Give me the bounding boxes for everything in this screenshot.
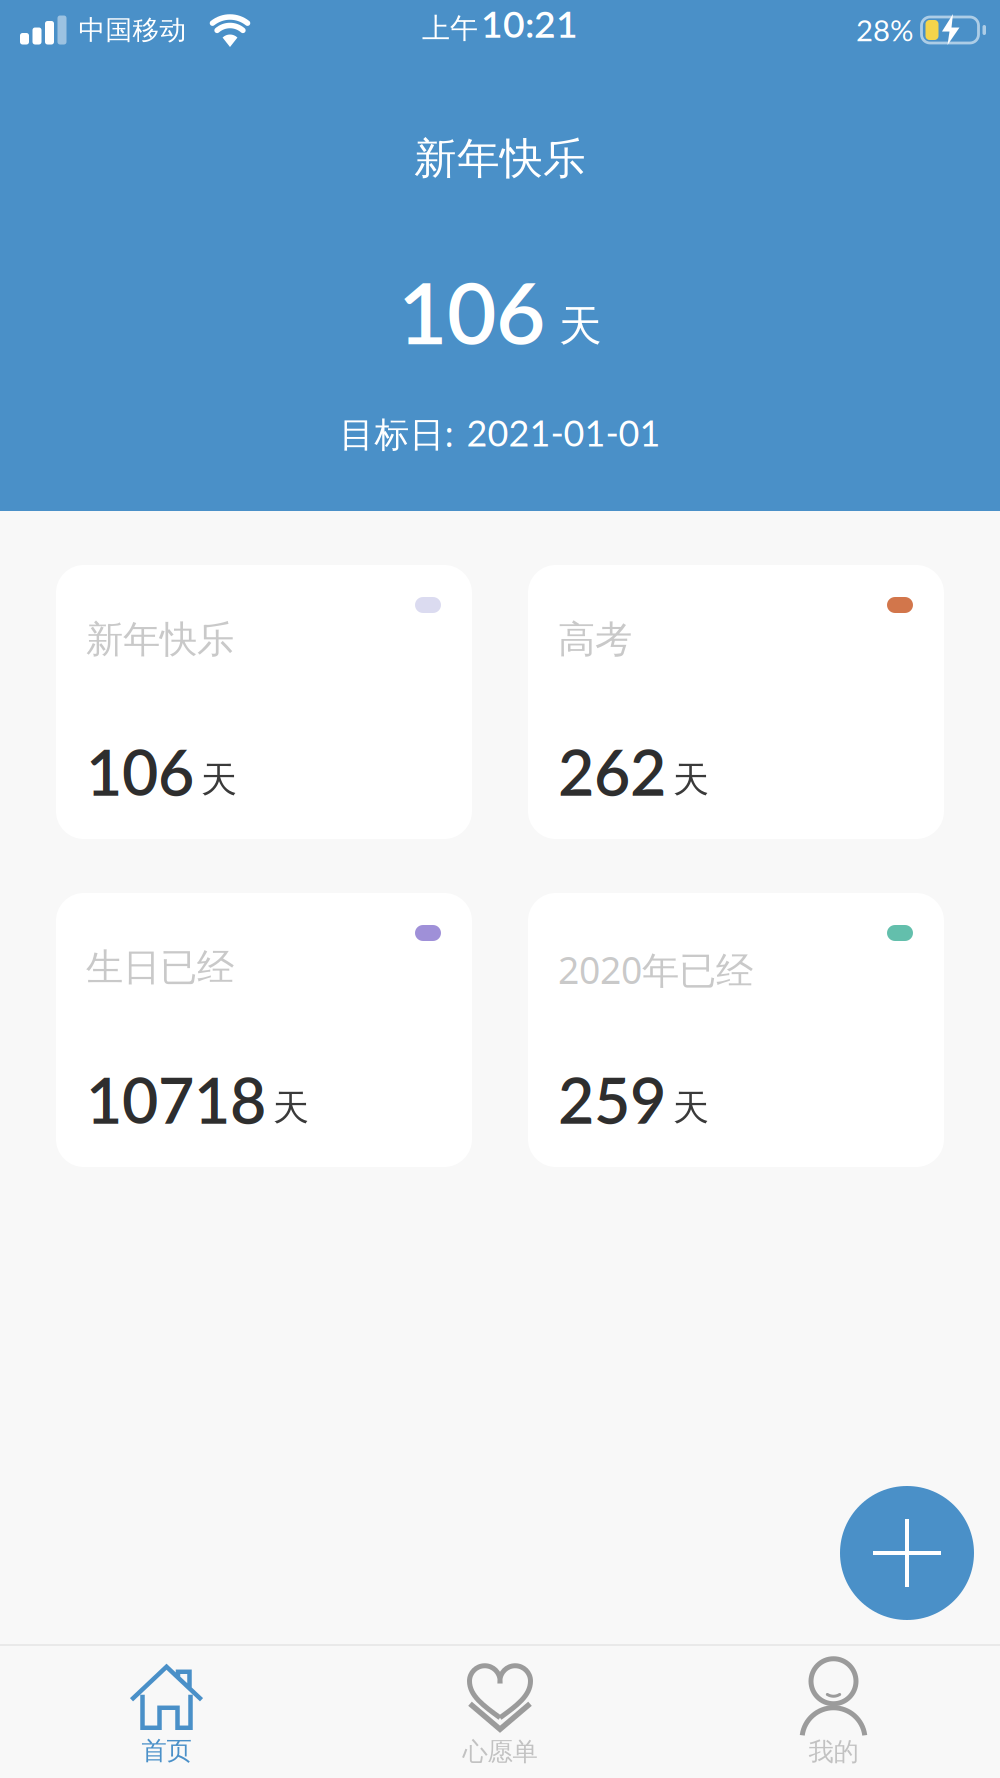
button[interactable]: 高考 bbox=[528, 565, 944, 839]
staticText: 上午 bbox=[422, 11, 478, 46]
staticText: 28% bbox=[856, 12, 914, 48]
staticText: 生日已经 bbox=[86, 944, 234, 991]
staticText: 新年快乐 bbox=[86, 616, 234, 663]
staticText: 2021-01-01 bbox=[466, 411, 660, 454]
button[interactable]: 我的 bbox=[667, 1646, 1000, 1778]
staticText: 我的 bbox=[808, 1736, 858, 1768]
staticText: 262 bbox=[558, 734, 666, 809]
staticText: 259 bbox=[558, 1062, 666, 1137]
staticText: 心愿单 bbox=[462, 1736, 537, 1768]
staticText: 天 bbox=[559, 299, 602, 353]
button[interactable]: 2020年已经 bbox=[528, 893, 944, 1167]
staticText: 天 bbox=[673, 757, 709, 802]
button[interactable]: 心愿单 bbox=[333, 1646, 667, 1778]
staticText: 中国移动 bbox=[78, 13, 186, 47]
staticText: 10718 bbox=[86, 1062, 266, 1137]
button[interactable]: 生日已经 bbox=[56, 893, 472, 1167]
staticText: 首页 bbox=[141, 1735, 191, 1767]
button[interactable]: 新年快乐 bbox=[56, 565, 472, 839]
staticText: 2020年已经 bbox=[558, 944, 753, 995]
staticText: 新年快乐 bbox=[414, 132, 586, 186]
button[interactable]: 首页 bbox=[0, 1646, 333, 1778]
staticText: 106 bbox=[86, 734, 194, 809]
staticText: 天 bbox=[201, 757, 237, 802]
staticText: 天 bbox=[273, 1085, 309, 1130]
staticText: 10:21 bbox=[481, 1, 578, 46]
staticText: 高考 bbox=[558, 616, 632, 663]
staticText: 目标日: bbox=[339, 410, 453, 457]
staticText: 106 bbox=[398, 260, 545, 362]
staticText: 天 bbox=[673, 1085, 709, 1130]
button[interactable]: 添加 bbox=[840, 1486, 974, 1620]
